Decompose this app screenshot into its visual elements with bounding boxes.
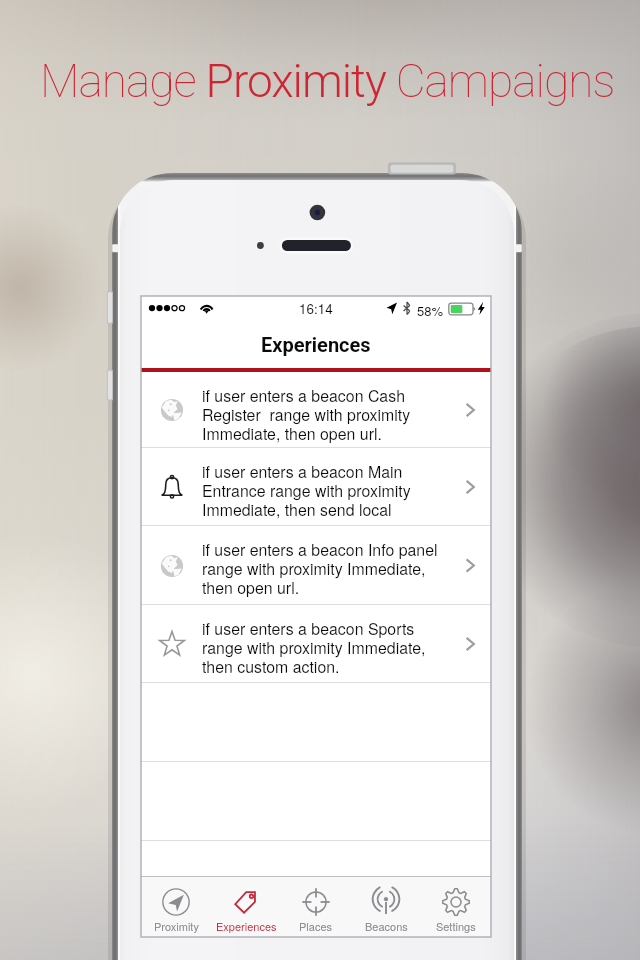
- staticText: if user enters a beacon Info panel range…: [202, 538, 438, 599]
- staticText: Manage Proximity Campaigns: [40, 54, 615, 108]
- button[interactable]: if user enters a beacon Cash Register ra…: [141, 372, 491, 448]
- staticText: Proximity: [154, 918, 199, 934]
- staticText: Experiences: [261, 333, 371, 356]
- button[interactable]: Settings: [421, 877, 491, 936]
- staticText: Beacons: [365, 918, 408, 934]
- button[interactable]: Experiences: [211, 877, 281, 936]
- button[interactable]: if user enters a beacon Info panel range…: [141, 526, 491, 605]
- button[interactable]: if user enters a beacon Main Entrance ra…: [141, 448, 491, 526]
- button[interactable]: Places: [281, 877, 351, 936]
- staticText: 16:14: [299, 299, 333, 318]
- staticText: if user enters a beacon Cash Register ra…: [202, 384, 411, 445]
- staticText: 58%: [417, 301, 444, 320]
- button[interactable]: Proximity: [141, 877, 211, 936]
- button[interactable]: Beacons: [351, 877, 421, 936]
- staticText: if user enters a beacon Sports range wit…: [202, 617, 426, 678]
- staticText: if user enters a beacon Main Entrance ra…: [202, 460, 411, 521]
- staticText: Settings: [436, 918, 476, 934]
- button[interactable]: if user enters a beacon Sports range wit…: [141, 605, 491, 683]
- staticText: Places: [299, 918, 333, 934]
- staticText: Experiences: [216, 918, 277, 934]
